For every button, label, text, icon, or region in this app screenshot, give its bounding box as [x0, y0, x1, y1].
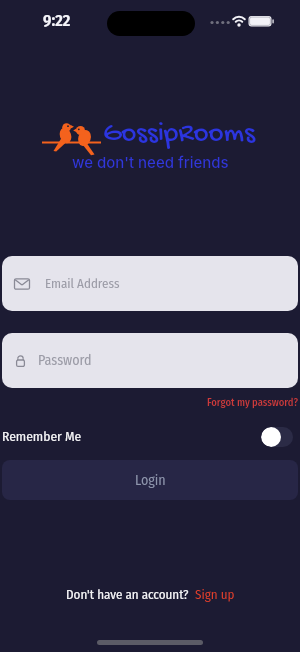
staticText: Password: [38, 352, 92, 369]
button[interactable]: [261, 427, 293, 447]
staticText: Email Address: [45, 276, 120, 292]
button[interactable]: Email Address: [2, 256, 298, 311]
staticText: 9:22: [43, 11, 71, 31]
button[interactable]: Login: [2, 460, 298, 500]
staticText: Don't have an account?: [66, 587, 189, 603]
button[interactable]: Sign up: [195, 587, 235, 603]
staticText: GossipRooms: [103, 118, 255, 152]
button[interactable]: Password: [2, 333, 298, 388]
staticText: Remember Me: [2, 428, 82, 444]
button[interactable]: Forgot my password?: [207, 396, 299, 409]
staticText: we don't need friends: [72, 153, 229, 171]
staticText: Login: [135, 472, 166, 489]
